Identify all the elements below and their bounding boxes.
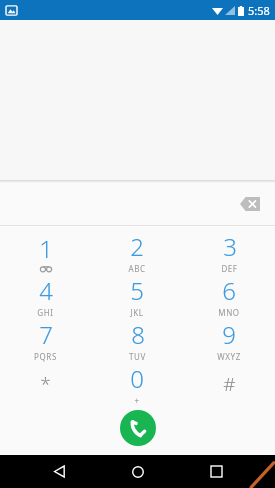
staticText: + xyxy=(134,395,140,406)
staticText: 2 xyxy=(130,230,144,263)
staticText: 5 xyxy=(130,274,144,307)
staticText: WXYZ xyxy=(217,351,241,362)
staticText: 0 xyxy=(130,362,144,395)
staticText: TUV xyxy=(129,351,146,362)
button[interactable]: 1 xyxy=(0,230,91,274)
button[interactable]: 8 xyxy=(91,318,183,362)
staticText: MNO xyxy=(218,307,240,318)
staticText: GHI xyxy=(37,307,54,318)
button[interactable]: 4 xyxy=(0,274,91,318)
button[interactable]: Call xyxy=(120,410,156,446)
button[interactable]: 2 xyxy=(91,230,183,274)
staticText: # xyxy=(223,371,236,397)
button[interactable]: 0 xyxy=(91,362,183,406)
staticText: PQRS xyxy=(34,351,57,362)
button[interactable]: Backspace xyxy=(233,187,267,221)
button[interactable]: * xyxy=(0,362,91,406)
staticText: 8 xyxy=(131,318,145,351)
button[interactable]: 3 xyxy=(183,230,275,274)
button[interactable]: 5 xyxy=(91,274,183,318)
button[interactable]: 7 xyxy=(0,318,91,362)
staticText: * xyxy=(40,371,51,397)
staticText: 5:58 xyxy=(248,3,270,18)
staticText: 1 xyxy=(39,232,53,265)
staticText: 7 xyxy=(39,318,53,351)
staticText: 4 xyxy=(39,274,53,307)
staticText: JKL xyxy=(130,307,144,318)
staticText: 9 xyxy=(222,318,236,351)
button[interactable]: # xyxy=(183,362,275,406)
staticText: 6 xyxy=(222,274,236,307)
button[interactable]: 6 xyxy=(183,274,275,318)
staticText: 3 xyxy=(223,230,237,263)
button[interactable]: 9 xyxy=(183,318,275,362)
staticText: DEF xyxy=(221,263,238,274)
button[interactable]: Home xyxy=(118,455,158,488)
staticText: ABC xyxy=(128,263,146,274)
button[interactable]: Back xyxy=(39,455,79,488)
button[interactable]: Recent apps xyxy=(196,455,236,488)
